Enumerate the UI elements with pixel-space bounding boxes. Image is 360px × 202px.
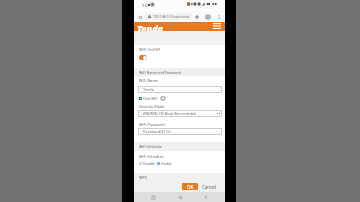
button[interactable]: Tabs: [204, 13, 212, 21]
staticText: OK: [187, 184, 194, 190]
button[interactable]: WiFi toggle: [139, 55, 147, 60]
button[interactable]: 192.168.0.1/index.html: [144, 13, 192, 20]
staticText: WPA/WPA2-PSK Mixed (Recommended): [143, 112, 197, 116]
staticText: Cancel: [202, 184, 216, 190]
button[interactable]: [139, 162, 142, 165]
button[interactable]: Cancel: [202, 183, 216, 190]
button[interactable]: Tenda: [138, 86, 222, 93]
button[interactable]: WPA/WPA2-PSK Mixed (Recommended): [138, 110, 222, 117]
staticText: WiFi Name: [139, 78, 159, 83]
staticText: Tenda: [143, 87, 154, 92]
button[interactable]: [139, 97, 142, 100]
staticText: WPS: [139, 175, 147, 180]
button[interactable]: More options: [215, 13, 223, 21]
staticText: Disable: [143, 161, 155, 166]
staticText: WiFi On/Off: [139, 47, 160, 52]
button[interactable]: Home: [175, 192, 185, 202]
staticText: WiFi Schedule: [139, 144, 162, 149]
button[interactable]: [157, 162, 160, 165]
button[interactable]: Home: [136, 13, 144, 21]
staticText: Password@123: [143, 129, 171, 134]
staticText: Hide WiFi: [143, 96, 158, 101]
button[interactable]: Password@123: [138, 128, 222, 135]
button[interactable]: Menu: [213, 23, 221, 29]
staticText: Security Mode: [139, 104, 165, 109]
staticText: WiFi Name and Password: [139, 70, 181, 75]
staticText: WiFi Schedule: [139, 154, 164, 159]
button[interactable]: Recent apps: [148, 192, 158, 202]
staticText: Enable: [161, 161, 172, 166]
staticText: Tenda: [137, 22, 164, 31]
staticText: 9:47: [142, 3, 150, 8]
staticText: WiFi Password: [139, 122, 165, 127]
button[interactable]: Back: [201, 192, 211, 202]
button[interactable]: New tab: [193, 13, 201, 21]
button[interactable]: OK: [182, 183, 198, 190]
staticText: 192.168.0.1/index.html: [153, 14, 190, 19]
